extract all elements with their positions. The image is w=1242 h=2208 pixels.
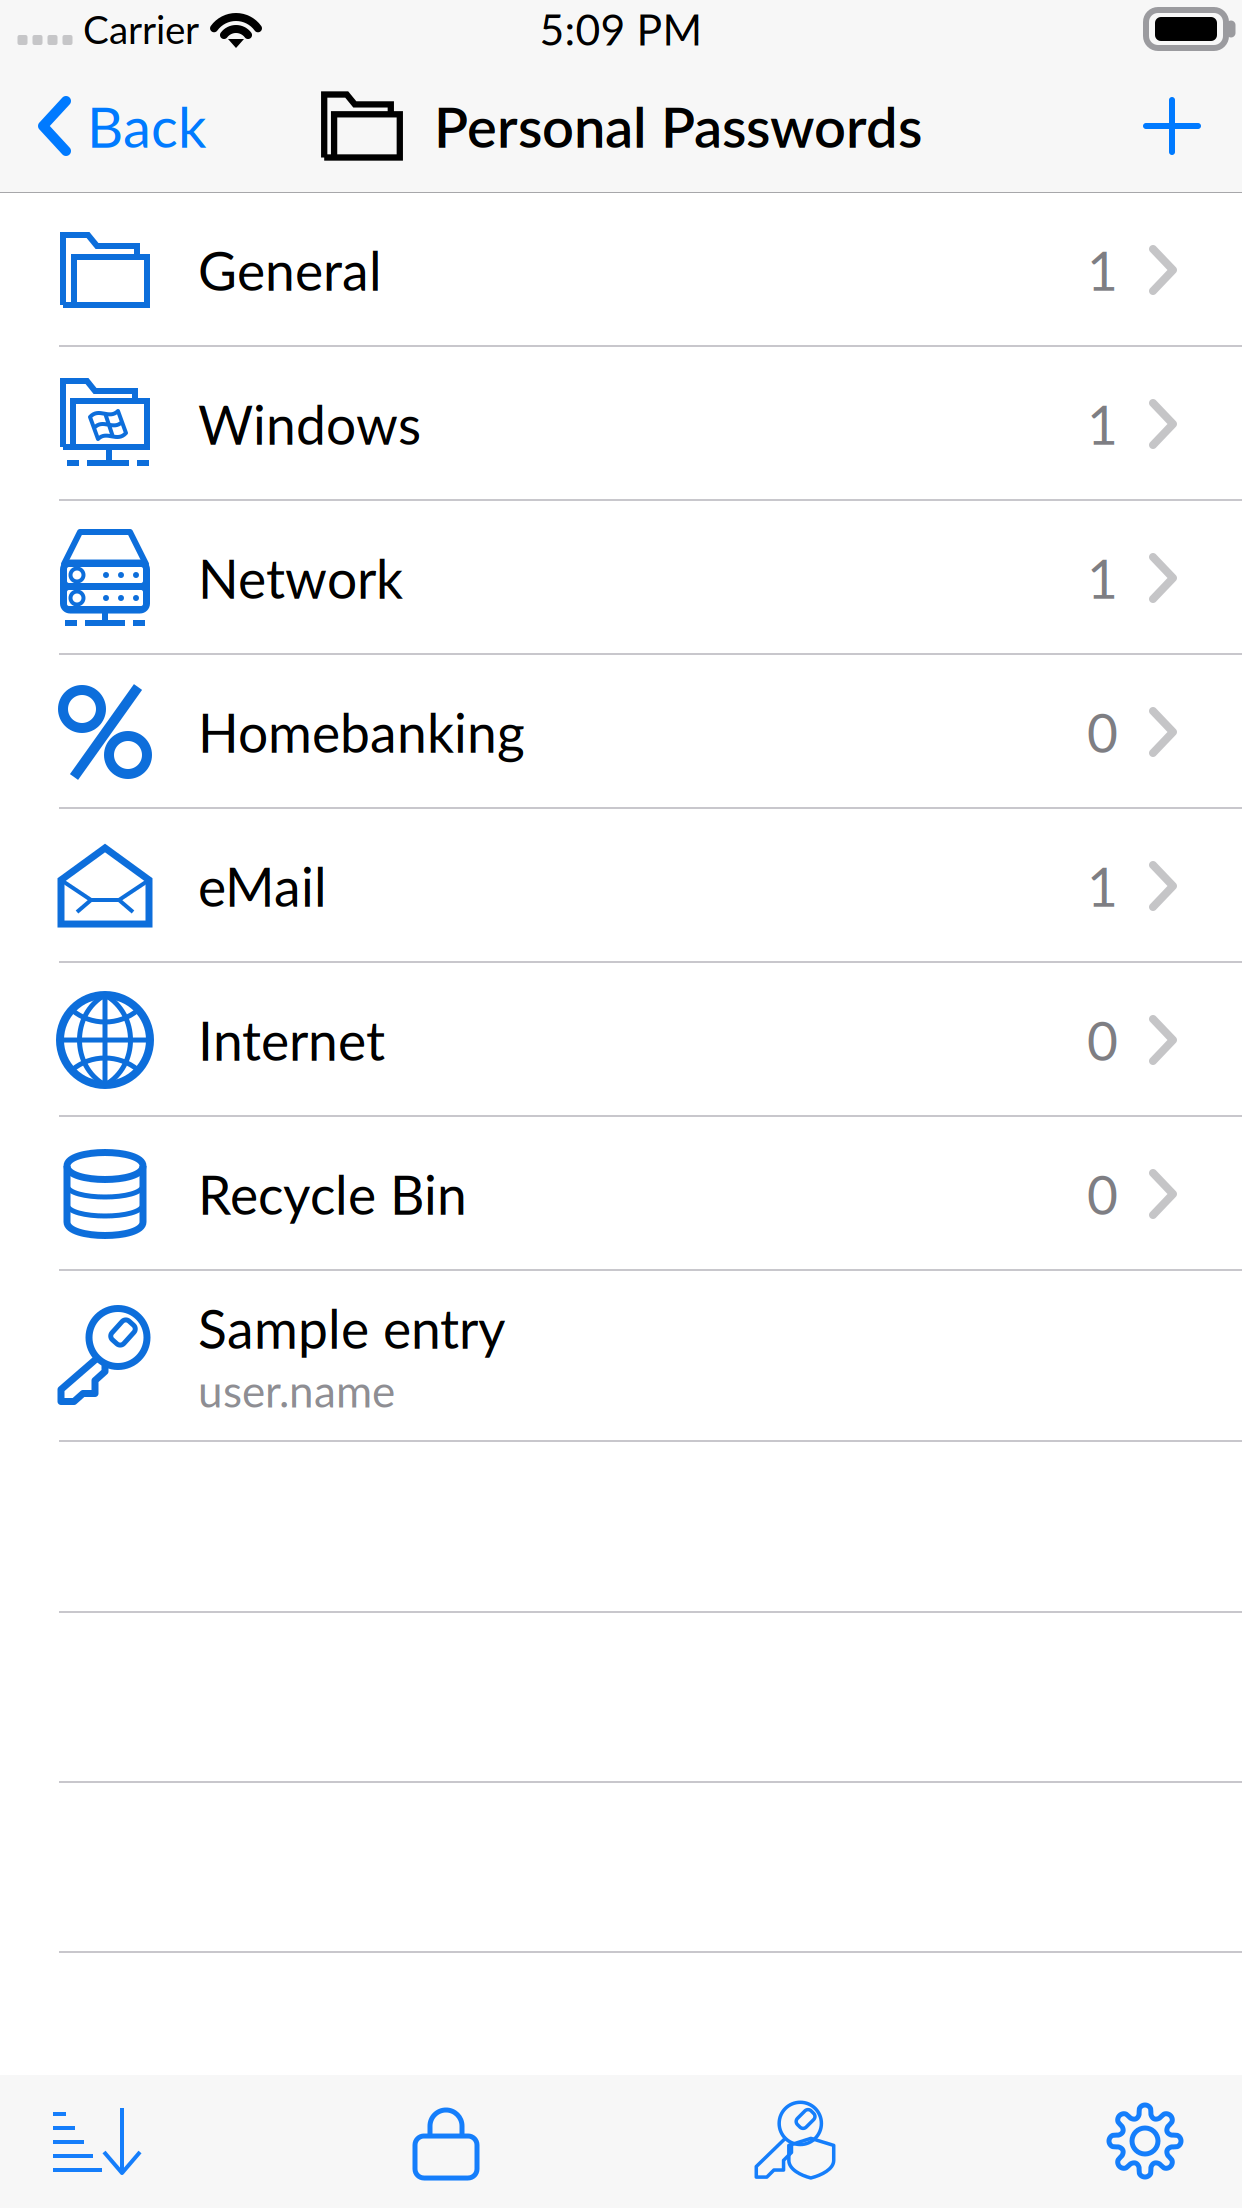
button[interactable]: Windows [0, 347, 1242, 501]
button[interactable]: Lock database [291, 2074, 601, 2207]
staticText: user.name [198, 1364, 395, 1417]
staticText: 1 [1087, 854, 1118, 918]
staticText: 1 [1087, 238, 1118, 302]
button[interactable]: General [0, 193, 1242, 347]
staticText: Network [198, 546, 403, 610]
staticText: 5:09 PM [539, 3, 702, 55]
button[interactable]: Network [0, 501, 1242, 655]
button[interactable]: Sort [0, 2074, 252, 2207]
staticText: General [198, 238, 382, 302]
staticText: Personal Passwords [434, 92, 922, 160]
staticText: Internet [198, 1008, 385, 1072]
button[interactable]: Recycle Bin [0, 1117, 1242, 1271]
staticText: 0 [1087, 700, 1118, 764]
button[interactable]: Internet [0, 963, 1242, 1117]
button[interactable]: eMail [0, 809, 1242, 963]
staticText: Homebanking [198, 700, 525, 764]
staticText: Back [87, 92, 206, 160]
button[interactable]: Generate password [640, 2074, 950, 2207]
staticText: Sample entry [198, 1296, 505, 1360]
staticText: 0 [1087, 1008, 1118, 1072]
button[interactable]: Homebanking [0, 655, 1242, 809]
staticText: Recycle Bin [198, 1162, 467, 1226]
staticText: eMail [198, 854, 327, 918]
staticText: 1 [1087, 546, 1118, 610]
button[interactable]: Settings [990, 2074, 1242, 2207]
button[interactable]: Back [0, 60, 300, 192]
button[interactable]: Sample entry [0, 1271, 1242, 1442]
staticText: Carrier [83, 6, 199, 52]
button[interactable]: Add [1102, 60, 1242, 192]
staticText: Windows [198, 392, 421, 456]
staticText: 0 [1087, 1162, 1118, 1226]
staticText: 1 [1087, 392, 1118, 456]
